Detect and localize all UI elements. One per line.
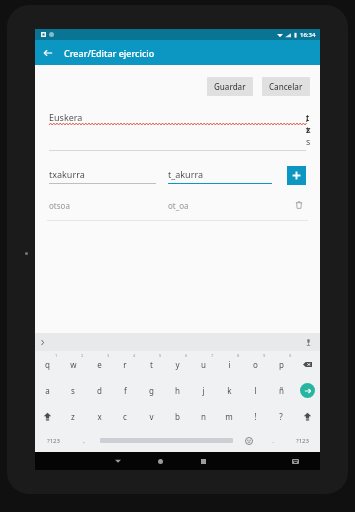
staticText: w (70, 359, 77, 370)
staticText: r (123, 359, 127, 370)
button[interactable]: k (216, 377, 242, 403)
button[interactable]: l (242, 377, 268, 403)
button[interactable]: o (242, 351, 268, 377)
staticText: d (97, 385, 102, 396)
staticText: i (228, 359, 231, 370)
staticText: 8 (237, 353, 240, 358)
button[interactable]: p (268, 351, 294, 377)
staticText: t (150, 359, 153, 370)
staticText: x (97, 411, 102, 422)
staticText: 2 (81, 353, 84, 358)
button[interactable]: Euskera (49, 111, 306, 151)
button[interactable]: e (86, 351, 112, 377)
staticText: s (71, 385, 75, 396)
button[interactable]: q (35, 351, 60, 377)
staticText: c (123, 411, 127, 422)
button[interactable]: otsoa (35, 198, 320, 221)
button[interactable]: s (60, 377, 86, 403)
staticText: 9 (263, 353, 266, 358)
button[interactable]: Guardar (207, 77, 253, 96)
button[interactable]: h (164, 377, 190, 403)
button[interactable]: u (190, 351, 216, 377)
staticText: f (124, 385, 127, 396)
button[interactable]: Home (147, 452, 174, 470)
staticText: ! (254, 411, 257, 422)
button[interactable]: Recent apps (190, 452, 217, 470)
button[interactable]: Voice input (303, 337, 314, 348)
staticText: ot_oa (168, 200, 189, 211)
button[interactable]: Add (287, 166, 306, 185)
staticText: ñ (279, 385, 284, 396)
staticText: n (201, 411, 206, 422)
button[interactable]: w (60, 351, 86, 377)
button[interactable]: c (112, 403, 138, 429)
staticText: q (45, 359, 50, 370)
button[interactable]: ñ (268, 377, 294, 403)
staticText: 0 (289, 353, 292, 358)
button[interactable]: v (138, 403, 164, 429)
button[interactable]: Cancelar (262, 77, 310, 96)
staticText: g (149, 385, 154, 396)
button[interactable]: txakurra (49, 168, 156, 184)
staticText: l (254, 385, 257, 396)
button[interactable]: z (60, 403, 86, 429)
button[interactable]: ? (268, 403, 294, 429)
staticText: 3 (107, 353, 110, 358)
staticText: txakurra (49, 168, 85, 180)
staticText: v (149, 411, 154, 422)
staticText: k (227, 385, 232, 396)
staticText: h (175, 385, 180, 396)
button[interactable]: t (138, 351, 164, 377)
button[interactable]: r (112, 351, 138, 377)
button[interactable]: Shift (294, 403, 320, 429)
button[interactable]: j (190, 377, 216, 403)
staticText: ?123 (47, 437, 60, 445)
button[interactable]: y (164, 351, 190, 377)
button[interactable]: b (164, 403, 190, 429)
staticText: p (279, 359, 284, 370)
staticText: y (175, 359, 180, 370)
button[interactable]: Shift (35, 403, 60, 429)
button[interactable]: n (190, 403, 216, 429)
button[interactable]: Enter (294, 377, 320, 403)
button[interactable]: ?123 (285, 429, 320, 452)
staticText: 6 (185, 353, 188, 358)
staticText: Crear/Editar ejercicio (64, 47, 155, 59)
staticText: 4 (133, 353, 136, 358)
staticText: . (272, 437, 274, 445)
button[interactable]: g (138, 377, 164, 403)
staticText: a (45, 385, 50, 396)
staticText: otsoa (49, 200, 168, 211)
button[interactable]: x (86, 403, 112, 429)
button[interactable]: Space (96, 429, 237, 452)
button[interactable]: d (86, 377, 112, 403)
staticText: ? (279, 411, 283, 422)
staticText: b (175, 411, 180, 422)
staticText: z (71, 411, 75, 422)
staticText: Guardar (214, 81, 246, 92)
button[interactable]: ! (242, 403, 268, 429)
staticText: o (253, 359, 258, 370)
staticText: 16:34 (300, 31, 316, 39)
button[interactable]: Backspace (294, 351, 320, 377)
button[interactable]: i (216, 351, 242, 377)
staticText: e (97, 359, 102, 370)
button[interactable]: Emoji (237, 429, 261, 452)
button[interactable]: Back (104, 452, 131, 470)
button[interactable]: a (35, 377, 60, 403)
button[interactable]: Back (35, 40, 60, 65)
staticText: m (225, 411, 233, 422)
staticText: 1 (55, 353, 58, 358)
button[interactable]: Delete (292, 198, 306, 212)
staticText: , (83, 437, 85, 445)
staticText: t_akurra (168, 168, 203, 180)
staticText: 5 (159, 353, 162, 358)
button[interactable]: m (216, 403, 242, 429)
button[interactable]: f (112, 377, 138, 403)
button[interactable]: Expand suggestions (37, 337, 47, 347)
button[interactable]: ?123 (35, 429, 71, 452)
button[interactable]: Switch keyboard (282, 452, 309, 470)
button[interactable]: t_akurra (168, 168, 272, 184)
